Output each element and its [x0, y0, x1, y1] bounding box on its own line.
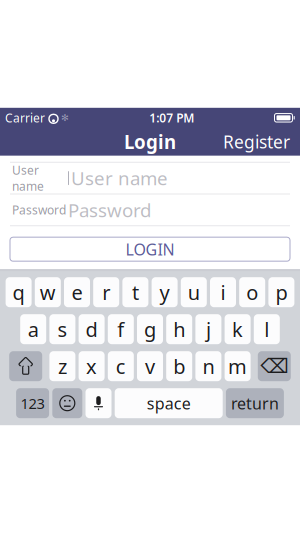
staticText: l — [264, 316, 269, 342]
staticText: b — [173, 353, 185, 379]
staticText: Password — [68, 197, 151, 222]
button[interactable]: Shift — [9, 351, 42, 381]
button[interactable]: Register — [215, 124, 298, 159]
button[interactable]: i — [210, 277, 236, 307]
button[interactable]: y — [152, 277, 178, 307]
staticText: LOGIN — [125, 239, 174, 260]
staticText: a — [28, 316, 39, 342]
button[interactable]: l — [254, 314, 280, 344]
staticText: Register — [223, 130, 290, 153]
staticText: space — [147, 393, 191, 414]
staticText: s — [57, 316, 67, 342]
button[interactable]: e — [64, 277, 90, 307]
button[interactable]: LOGIN — [10, 237, 290, 261]
button[interactable]: w — [35, 277, 61, 307]
button[interactable]: j — [195, 314, 221, 344]
staticText: p — [275, 279, 287, 305]
staticText: z — [58, 353, 67, 379]
button[interactable]: q — [6, 277, 32, 307]
button[interactable]: Emoji — [52, 388, 82, 418]
staticText: t — [132, 279, 139, 305]
staticText: d — [86, 316, 98, 342]
button[interactable]: t — [122, 277, 148, 307]
staticText: h — [173, 316, 185, 342]
button[interactable]: m — [225, 351, 251, 381]
staticText: o — [246, 279, 258, 305]
staticText: q — [13, 279, 25, 305]
button[interactable]: a — [20, 314, 46, 344]
staticText: 123 — [21, 393, 45, 413]
staticText: r — [102, 279, 110, 305]
staticText: m — [228, 353, 247, 379]
staticText: n — [202, 353, 214, 379]
staticText: j — [206, 316, 211, 342]
staticText: w — [40, 279, 56, 305]
staticText: y — [160, 279, 170, 305]
staticText: ⌫ — [260, 355, 288, 378]
button[interactable]: k — [225, 314, 251, 344]
staticText: u — [188, 279, 200, 305]
button[interactable]: u — [181, 277, 207, 307]
button[interactable]: space — [115, 388, 223, 418]
staticText: f — [117, 316, 124, 342]
staticText: Password — [12, 202, 66, 218]
button[interactable]: z — [49, 351, 75, 381]
button[interactable]: b — [166, 351, 192, 381]
button[interactable]: n — [195, 351, 221, 381]
button[interactable]: return — [226, 388, 284, 418]
button[interactable]: d — [79, 314, 105, 344]
staticText: ✻ — [61, 112, 69, 123]
staticText: User name — [12, 162, 44, 194]
button[interactable]: x — [79, 351, 105, 381]
button[interactable]: 123 — [16, 388, 49, 418]
button[interactable]: v — [137, 351, 163, 381]
button[interactable]: o — [239, 277, 265, 307]
button[interactable]: Delete — [258, 351, 291, 381]
staticText: k — [232, 316, 243, 342]
button[interactable]: h — [166, 314, 192, 344]
staticText: User name — [71, 166, 168, 190]
button[interactable]: Dictation — [85, 388, 111, 418]
staticText: 1:07 PM — [149, 110, 194, 126]
button[interactable]: g — [137, 314, 163, 344]
staticText: Login — [124, 129, 176, 154]
staticText: c — [116, 353, 126, 379]
button[interactable]: f — [108, 314, 134, 344]
button[interactable]: s — [49, 314, 75, 344]
staticText: Carrier — [5, 110, 45, 126]
staticText: return — [231, 393, 279, 414]
staticText: v — [145, 353, 155, 379]
staticText: i — [220, 279, 225, 305]
staticText: g — [144, 316, 156, 342]
button[interactable]: r — [93, 277, 119, 307]
staticText: x — [86, 353, 97, 379]
button[interactable]: c — [108, 351, 134, 381]
staticText: e — [71, 279, 82, 305]
button[interactable]: p — [268, 277, 294, 307]
